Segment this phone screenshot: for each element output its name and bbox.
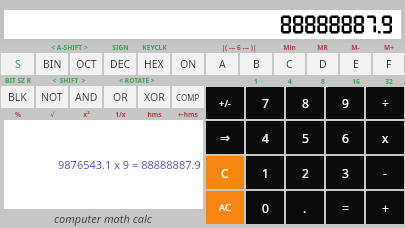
staticText: M- [351, 43, 360, 52]
staticText: x [382, 130, 389, 146]
staticText: F [386, 57, 392, 71]
button[interactable]: ON [172, 53, 204, 75]
staticText: Min [283, 43, 296, 52]
button[interactable]: OR [104, 86, 136, 108]
staticText: computer math calc [54, 211, 152, 226]
staticText: < ROTATE > [119, 76, 155, 85]
staticText: 1 [262, 165, 269, 181]
staticText: 6 [342, 130, 349, 146]
staticText: KEYCLK [142, 43, 167, 52]
button[interactable]: COMP [172, 86, 204, 108]
button[interactable]: C [206, 156, 244, 189]
button[interactable]: +/- [206, 87, 244, 119]
staticText: 4 [262, 130, 269, 146]
button[interactable]: DEC [104, 53, 136, 75]
staticText: C [286, 57, 293, 71]
button[interactable]: = [326, 191, 364, 224]
staticText: 8 [321, 77, 325, 86]
staticText: BIN [43, 57, 62, 71]
button[interactable]: 9 [326, 87, 364, 119]
staticText: = [342, 200, 349, 216]
staticText: 2 [302, 165, 309, 181]
staticText: ⇒ [220, 131, 231, 145]
button[interactable]: 0 [246, 191, 284, 224]
staticText: BLK [8, 90, 27, 104]
staticText: OR [113, 90, 128, 104]
button[interactable]: . [286, 191, 324, 224]
staticText: 1/x [115, 110, 126, 119]
staticText: DEC [110, 57, 131, 71]
staticText: MR [317, 43, 328, 52]
staticText: 16 [352, 77, 360, 86]
staticText: AND [75, 90, 98, 104]
staticText: B [253, 57, 260, 71]
staticText: 4 [288, 77, 292, 86]
button[interactable]: x [366, 121, 404, 154]
button[interactable]: 6 [326, 121, 364, 154]
button[interactable]: BIN [36, 53, 68, 75]
staticText: SIGN [112, 43, 129, 52]
staticText: +/- [219, 97, 232, 110]
staticText: A [219, 57, 226, 71]
staticText: % [15, 110, 21, 119]
button[interactable]: XOR [138, 86, 170, 108]
staticText: 7 [262, 95, 269, 111]
button[interactable]: S [1, 53, 34, 75]
button[interactable]: ÷ [366, 87, 404, 119]
button[interactable]: 8 [286, 87, 324, 119]
staticText: 1 [254, 77, 258, 86]
staticText: < SHIFT > [52, 76, 86, 85]
staticText: hms [147, 110, 162, 119]
staticText: < A-SHIFT > [51, 43, 88, 52]
staticText: D [319, 57, 327, 71]
staticText: OCT [76, 57, 97, 71]
staticText: BIT SZ R [5, 76, 31, 85]
staticText: AC [219, 201, 231, 214]
button[interactable]: AC [206, 191, 244, 224]
staticText: |( --- 6 --- )| [221, 43, 257, 52]
staticText: √ [50, 111, 55, 119]
staticText: 5 [302, 130, 309, 146]
button[interactable]: C [274, 53, 305, 75]
staticText: E [353, 57, 359, 71]
button[interactable]: ⇒ [206, 121, 244, 154]
staticText: HEX [144, 57, 164, 71]
staticText: . [303, 200, 307, 216]
button[interactable]: 4 [246, 121, 284, 154]
staticText: 3 [342, 165, 349, 181]
button[interactable]: 7 [246, 87, 284, 119]
button[interactable]: 2 [286, 156, 324, 189]
button[interactable]: F [373, 53, 404, 75]
staticText: 9 [342, 95, 349, 111]
staticText: 0 [262, 200, 269, 216]
button[interactable]: 3 [326, 156, 364, 189]
button[interactable]: NOT [36, 86, 68, 108]
staticText: ÷ [382, 95, 389, 111]
button[interactable]: AND [70, 86, 102, 108]
button[interactable]: A [206, 53, 238, 75]
staticText: - [383, 165, 387, 181]
button[interactable]: E [340, 53, 371, 75]
staticText: XOR [144, 90, 165, 104]
button[interactable]: OCT [70, 53, 102, 75]
button[interactable]: - [366, 156, 404, 189]
button[interactable]: 1 [246, 156, 284, 189]
button[interactable]: B [240, 53, 272, 75]
staticText: NOT [41, 90, 63, 104]
staticText: COMP [176, 92, 200, 103]
staticText: ON [180, 57, 197, 71]
staticText: M+ [384, 43, 394, 52]
button[interactable]: BLK [1, 86, 34, 108]
button[interactable]: 5 [286, 121, 324, 154]
staticText: x² [83, 110, 90, 119]
button[interactable]: HEX [138, 53, 170, 75]
staticText: S [15, 57, 21, 71]
staticText: 9876543.1 x 9 = 88888887.9 [58, 157, 201, 172]
staticText: ←hms [178, 110, 198, 119]
button[interactable]: + [366, 191, 404, 224]
staticText: 32 [385, 77, 393, 86]
staticText: C [221, 165, 229, 181]
staticText: 8 [302, 95, 309, 111]
button[interactable]: D [307, 53, 338, 75]
staticText: + [382, 200, 389, 216]
